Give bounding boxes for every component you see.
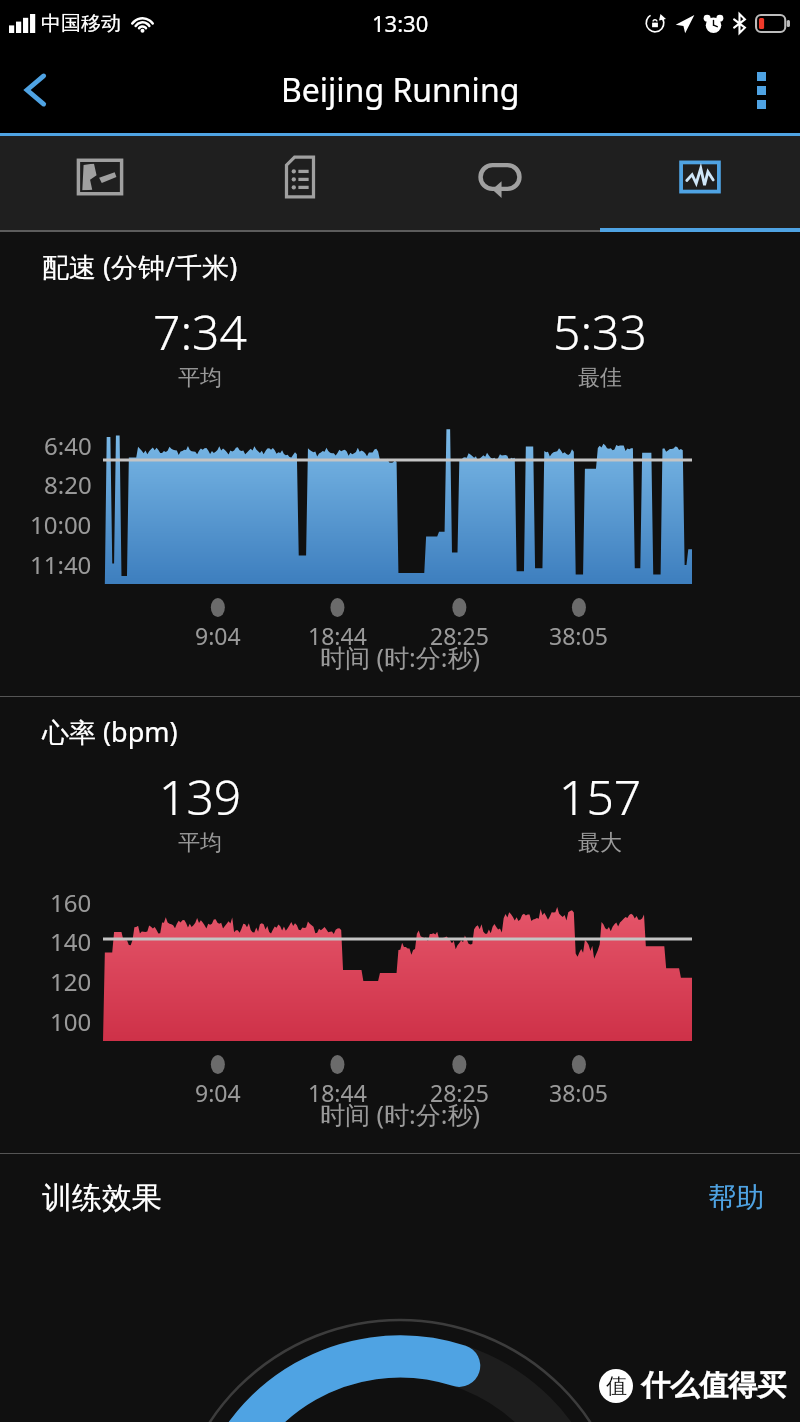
staticText: 28:25 [430,620,489,651]
staticText: 7:34 [153,299,247,364]
staticText: 100 [50,1005,92,1038]
staticText: 配速 (分钟/千米) [42,248,238,285]
staticText: 140 [50,925,92,958]
button[interactable]: 帮助 [702,1174,770,1221]
staticText: 中国移动 [41,11,121,36]
staticText: 9:04 [195,620,241,651]
button[interactable]: More options [730,59,792,121]
staticText: 18:44 [308,1077,367,1108]
staticText: 160 [50,886,92,919]
staticText: 38:05 [549,1077,608,1108]
staticText: 平均 [178,364,222,392]
staticText: 13:30 [372,8,429,38]
staticText: 心率 (bpm) [42,713,178,750]
staticText: 训练效果 [42,1179,162,1217]
staticText: 6:40 [44,429,92,462]
staticText: 120 [50,965,92,998]
button[interactable]: Map [0,136,200,232]
button[interactable]: Charts [600,136,800,232]
staticText: 38:05 [549,620,608,651]
staticText: 18:44 [308,620,367,651]
button[interactable]: Details [200,136,400,232]
staticText: 时间 (时:分:秒) [320,640,480,674]
staticText: 最佳 [578,364,622,392]
staticText: 9:04 [195,1077,241,1108]
staticText: Beijing Running [281,68,520,112]
button[interactable]: Back [4,58,68,122]
staticText: 10:00 [30,508,92,541]
staticText: 什么值得买 [641,1367,786,1404]
staticText: 139 [159,764,242,829]
staticText: 5:33 [553,299,647,364]
staticText: 最大 [578,829,622,857]
button[interactable]: Laps [400,136,600,232]
staticText: 值 [606,1373,627,1399]
staticText: 帮助 [708,1180,764,1215]
staticText: 平均 [178,829,222,857]
staticText: 时间 (时:分:秒) [320,1097,480,1131]
staticText: 8:20 [44,468,92,501]
staticText: 28:25 [430,1077,489,1108]
staticText: 157 [559,764,642,829]
staticText: 11:40 [30,548,92,581]
